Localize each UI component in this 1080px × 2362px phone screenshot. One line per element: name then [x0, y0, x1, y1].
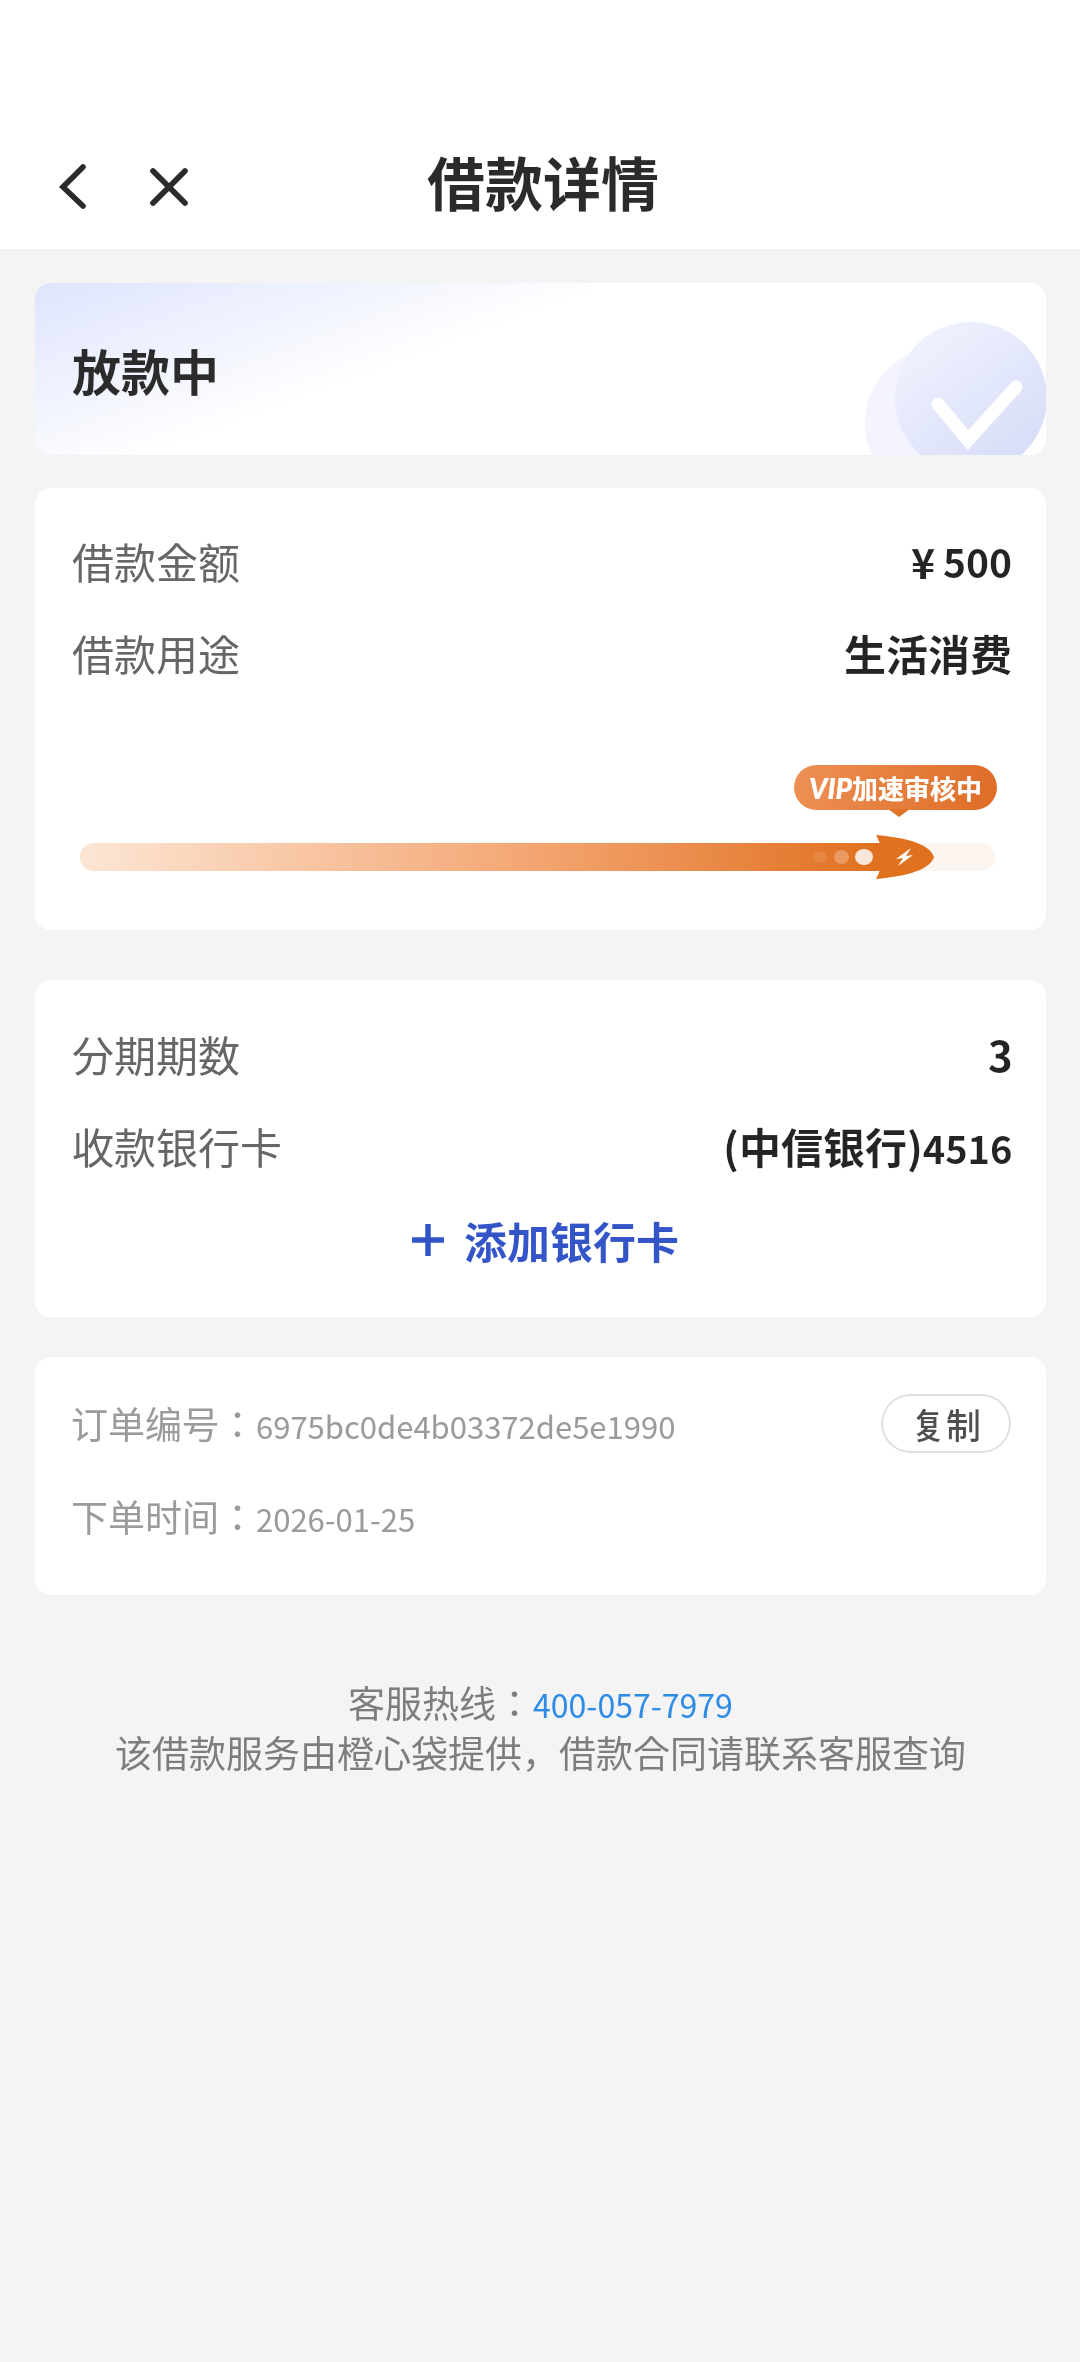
staticText: 生活消费	[844, 622, 1013, 683]
staticText: VIP加速审核中	[809, 769, 982, 807]
staticText: 添加银行卡	[464, 1209, 679, 1271]
staticText: 借款详情	[427, 139, 660, 219]
button[interactable]: 复制	[881, 1394, 1011, 1453]
staticText: 分期期数	[72, 1023, 241, 1084]
button[interactable]: Close	[129, 147, 209, 227]
staticText: ¥	[911, 531, 936, 590]
button[interactable]: 客服热线：400-057-7979	[348, 1675, 733, 1729]
button[interactable]: Back	[33, 146, 113, 226]
staticText: 放款中	[72, 334, 220, 405]
staticText: (中信银行)4516	[723, 1115, 1013, 1176]
staticText: 500	[943, 533, 1013, 589]
staticText: 下单时间：2026-01-25	[71, 1489, 416, 1543]
staticText: 借款用途	[72, 622, 241, 683]
staticText: 复制	[911, 1398, 982, 1449]
staticText: 该借款服务由橙心袋提供，借款合同请联系客服查询	[115, 1725, 966, 1779]
staticText: 借款金额	[72, 530, 241, 591]
button[interactable]: 添加银行卡	[40, 1200, 1046, 1280]
button[interactable]: VIP加速审核中	[794, 765, 997, 810]
staticText: 3	[988, 1023, 1013, 1084]
staticText: 收款银行卡	[72, 1115, 283, 1176]
staticText: 订单编号：6975bc0de4b03372de5e1990	[71, 1396, 676, 1450]
